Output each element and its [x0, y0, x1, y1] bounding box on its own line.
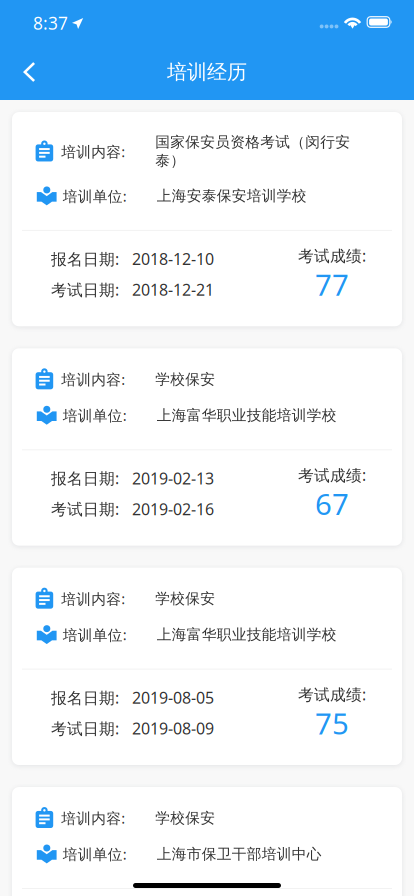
staticText: 上海富华职业技能培训学校 [157, 625, 337, 644]
staticText: 上海市保卫干部培训中心 [157, 845, 322, 863]
staticText: 上海富华职业技能培训学校 [157, 406, 337, 425]
staticText: 2019-02-16 [132, 498, 214, 520]
staticText: 2019-08-09 [132, 717, 214, 739]
staticText: 培训单位: [63, 844, 127, 864]
staticText: 2019-08-05 [132, 687, 214, 708]
staticText: 培训单位: [63, 405, 127, 425]
staticText: 考试日期: [51, 498, 119, 520]
staticText: 报名日期: [51, 687, 119, 708]
staticText: 学校保安 [155, 370, 215, 389]
staticText: 75 [315, 703, 349, 743]
staticText: 报名日期: [51, 248, 119, 269]
staticText: 学校保安 [155, 589, 215, 608]
staticText: 考试日期: [51, 718, 119, 739]
staticText: 8:37 [33, 11, 68, 35]
staticText: 国家保安员资格考试（闵行安泰） [155, 133, 350, 170]
staticText: 培训内容: [61, 141, 125, 161]
staticText: 2019-02-13 [132, 467, 214, 489]
staticText: 考试成绩: [298, 245, 366, 266]
staticText: 上海安泰保安培训学校 [157, 187, 307, 205]
staticText: 培训单位: [63, 625, 127, 645]
staticText: 学校保安 [155, 809, 215, 827]
staticText: 2018-12-10 [132, 248, 214, 270]
staticText: 考试成绩: [298, 464, 366, 486]
staticText: 培训内容: [61, 369, 125, 389]
staticText: 培训内容: [61, 808, 125, 828]
button[interactable]: Back [0, 50, 51, 94]
staticText: 培训单位: [63, 186, 127, 206]
staticText: 77 [315, 264, 349, 304]
staticText: 考试成绩: [298, 684, 366, 705]
staticText: 67 [315, 484, 349, 524]
staticText: 考试日期: [51, 279, 119, 300]
staticText: 培训内容: [61, 589, 125, 609]
staticText: 培训经历 [167, 59, 247, 85]
staticText: 2018-12-21 [132, 279, 214, 300]
staticText: 报名日期: [51, 467, 119, 489]
